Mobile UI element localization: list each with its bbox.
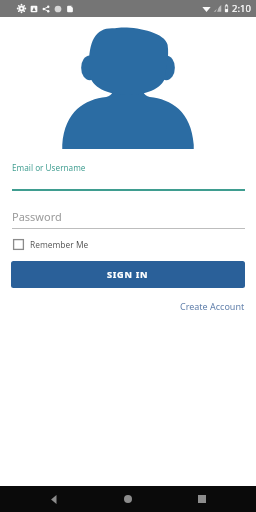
button[interactable]: Email or Username: [0, 162, 256, 191]
staticText: Email or Username: [12, 162, 86, 173]
staticText: Create Account: [180, 300, 245, 312]
button[interactable]: Back: [44, 489, 64, 509]
staticText: Remember Me: [30, 239, 89, 250]
button[interactable]: Create Account: [169, 298, 256, 314]
button[interactable]: Home: [118, 489, 138, 509]
staticText: SIGN IN: [107, 268, 149, 281]
staticText: Password: [12, 209, 62, 224]
staticText: 2:10: [232, 2, 251, 15]
button[interactable]: SIGN IN: [11, 261, 245, 288]
button[interactable]: Remember Me: [0, 237, 97, 252]
button[interactable]: Recent apps: [192, 489, 212, 509]
button[interactable]: Password: [0, 209, 256, 229]
